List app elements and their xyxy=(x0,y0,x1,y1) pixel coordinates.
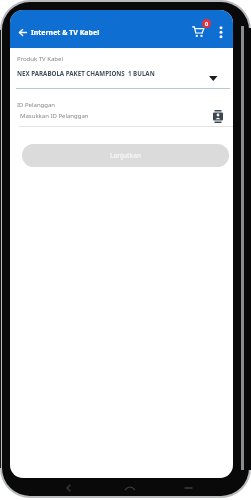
button[interactable] xyxy=(14,24,31,40)
button[interactable] xyxy=(214,21,228,43)
staticText: Produk TV Kabel xyxy=(17,55,63,63)
staticText: Internet & TV Kabel xyxy=(31,28,100,38)
button[interactable] xyxy=(189,20,213,44)
staticText: Lanjutkan xyxy=(110,151,142,160)
staticText: NEX PARABOLA PAKET CHAMPIONS 1 BULAN xyxy=(17,69,155,77)
button[interactable]: NEX PARABOLA PAKET CHAMPIONS 1 BULAN xyxy=(15,66,229,89)
staticText: ID Pelanggan xyxy=(17,101,56,109)
staticText: 0 xyxy=(205,20,209,27)
button[interactable]: Masukkan ID Pelanggan xyxy=(15,109,229,129)
staticText: Masukkan ID Pelanggan xyxy=(20,112,89,120)
button[interactable]: Lanjutkan xyxy=(22,144,229,167)
